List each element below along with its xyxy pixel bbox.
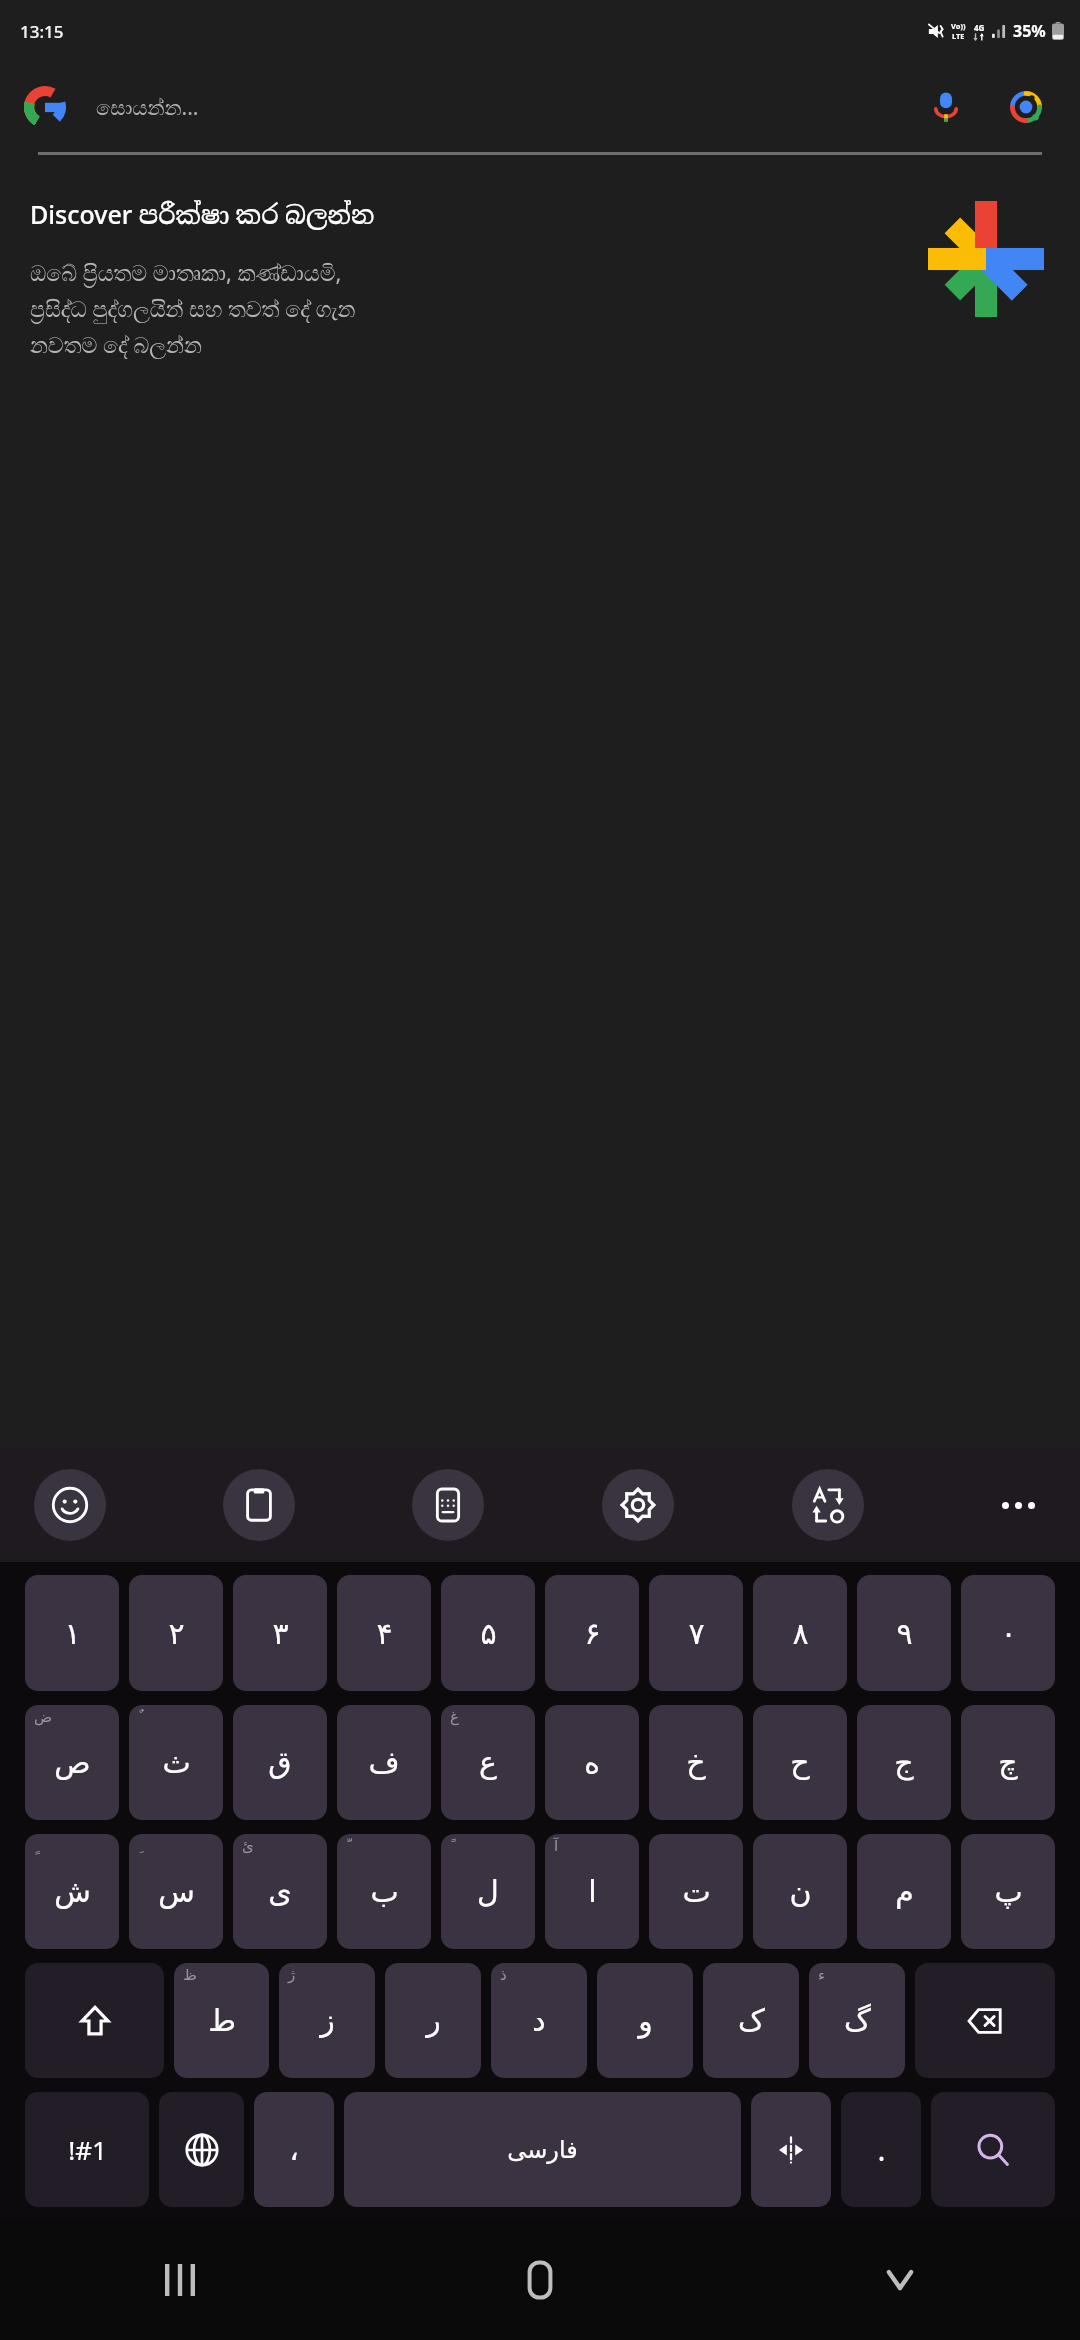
staticText: غ — [450, 1708, 459, 1725]
staticText: فارسی — [507, 2136, 578, 2164]
button[interactable]: ر — [385, 1963, 481, 2078]
staticText: ۰ — [1000, 1616, 1017, 1651]
staticText: LTE — [952, 31, 965, 41]
button[interactable]: و — [597, 1963, 693, 2078]
button[interactable]: ء — [809, 1963, 905, 2078]
button[interactable]: Home — [360, 2220, 720, 2340]
staticText: و — [638, 2003, 653, 2038]
button[interactable]: Translate — [792, 1469, 864, 1541]
button[interactable]: ۲ — [129, 1575, 223, 1691]
button[interactable]: ت — [649, 1834, 743, 1949]
staticText: ئ — [242, 1837, 254, 1854]
staticText: ک — [738, 2003, 765, 2038]
button[interactable]: ق — [233, 1705, 327, 1820]
button[interactable]: Voice search — [918, 79, 974, 135]
button[interactable]: ۹ — [857, 1575, 951, 1691]
button[interactable]: م — [857, 1834, 951, 1949]
staticText: گ — [844, 2003, 871, 2038]
button[interactable]: ج — [857, 1705, 951, 1820]
button[interactable]: ً — [441, 1834, 535, 1949]
button[interactable]: ّ — [337, 1834, 431, 1949]
button[interactable]: Move cursor — [751, 2092, 831, 2207]
button[interactable]: ذ — [491, 1963, 587, 2078]
button[interactable]: ۸ — [753, 1575, 847, 1691]
button[interactable]: ۰ — [961, 1575, 1055, 1691]
button[interactable]: ۶ — [545, 1575, 639, 1691]
button[interactable]: فارسی — [344, 2092, 741, 2207]
button[interactable]: ۱ — [25, 1575, 119, 1691]
button[interactable]: ه — [545, 1705, 639, 1820]
staticText: ف — [368, 1745, 400, 1780]
button[interactable]: . — [841, 2092, 921, 2207]
button[interactable]: ۳ — [233, 1575, 327, 1691]
staticText: ت — [682, 1874, 711, 1909]
staticText: ر — [426, 2003, 441, 2038]
staticText: ظ — [183, 1966, 197, 1983]
staticText: ۳ — [272, 1616, 289, 1651]
staticText: ص — [54, 1745, 91, 1780]
button[interactable]: Shift — [25, 1963, 164, 2078]
button[interactable]: ۷ — [649, 1575, 743, 1691]
button[interactable]: Recent apps — [0, 2220, 360, 2340]
staticText: چ — [998, 1745, 1018, 1780]
button[interactable]: !#1 — [25, 2092, 149, 2207]
button[interactable]: ٍ — [25, 1834, 119, 1949]
staticText: م — [895, 1874, 914, 1909]
button[interactable]: ظ — [174, 1963, 269, 2078]
button[interactable]: More options — [982, 1469, 1054, 1541]
staticText: ඔබේ ප්‍රියතම මාතෘකා, කණ්ඩායමි, ප්‍රසිද්ධ… — [30, 257, 356, 360]
button[interactable]: ، — [254, 2092, 334, 2207]
button[interactable]: ح — [753, 1705, 847, 1820]
staticText: خ — [686, 1745, 706, 1780]
button[interactable]: ژ — [279, 1963, 375, 2078]
button[interactable]: آ — [545, 1834, 639, 1949]
staticText: ۶ — [584, 1616, 601, 1651]
button[interactable]: Google Lens — [998, 79, 1054, 135]
button[interactable]: پ — [961, 1834, 1055, 1949]
button[interactable]: Hide keyboard — [720, 2220, 1080, 2340]
button[interactable]: Backspace — [915, 1963, 1055, 2078]
button[interactable]: غ — [441, 1705, 535, 1820]
staticText: ا — [588, 1874, 597, 1909]
staticText: ء — [818, 1966, 826, 1983]
button[interactable]: Discover පරීක්ෂා කර බලන්න — [30, 197, 1044, 360]
staticText: د — [532, 2003, 546, 2038]
button[interactable]: Clipboard — [223, 1469, 295, 1541]
button[interactable]: ف — [337, 1705, 431, 1820]
staticText: آ — [554, 1837, 559, 1854]
button[interactable]: Settings — [602, 1469, 674, 1541]
button[interactable]: چ — [961, 1705, 1055, 1820]
staticText: ث — [162, 1745, 191, 1780]
staticText: ۹ — [896, 1616, 913, 1651]
button[interactable]: One handed keyboard — [412, 1469, 484, 1541]
staticText: ج — [894, 1745, 914, 1780]
staticText: ۲ — [168, 1616, 185, 1651]
staticText: ، — [289, 2132, 299, 2167]
button[interactable]: Search — [931, 2092, 1055, 2207]
staticText: ل — [477, 1874, 499, 1909]
button[interactable]: ض — [25, 1705, 119, 1820]
button[interactable]: ۵ — [441, 1575, 535, 1691]
button[interactable]: ک — [703, 1963, 799, 2078]
staticText: සොයන්න... — [96, 93, 199, 122]
button[interactable]: ۴ — [337, 1575, 431, 1691]
button[interactable]: Change language — [159, 2092, 244, 2207]
staticText: ۵ — [480, 1616, 497, 1651]
staticText: Vo)) — [951, 21, 966, 31]
staticText: ی — [268, 1874, 292, 1909]
staticText: !#1 — [68, 2132, 107, 2167]
staticText: ش — [54, 1874, 91, 1909]
staticText: پ — [994, 1874, 1023, 1909]
button[interactable]: ئ — [233, 1834, 327, 1949]
button[interactable]: ن — [753, 1834, 847, 1949]
staticText: 35% — [1013, 20, 1046, 42]
button[interactable]: خ — [649, 1705, 743, 1820]
button[interactable]: Emoji — [34, 1469, 106, 1541]
button[interactable]: ٌ — [129, 1705, 223, 1820]
staticText: ح — [790, 1745, 810, 1780]
staticText: ۷ — [688, 1616, 705, 1651]
button[interactable]: සොයන්න... — [0, 62, 1080, 152]
button[interactable]: ِ — [129, 1834, 223, 1949]
staticText: ز — [320, 2003, 335, 2038]
staticText: Discover පරීක්ෂා කර බලන්න — [30, 197, 375, 231]
